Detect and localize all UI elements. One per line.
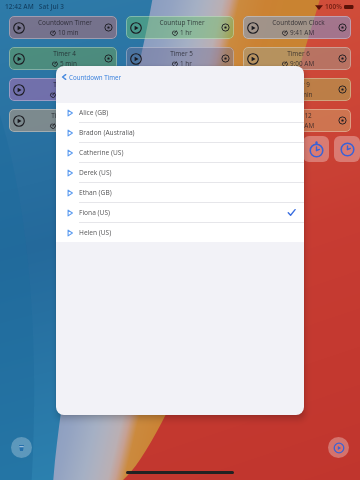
staticText: Bradon (Australia) bbox=[79, 128, 135, 137]
staticText: 7:30 AM bbox=[290, 121, 315, 130]
button[interactable]: Alice (GB) bbox=[56, 103, 304, 122]
button[interactable]: Timer 4 bbox=[9, 47, 117, 70]
staticText: Ethan (GB) bbox=[79, 188, 112, 197]
staticText: 9:00 AM bbox=[290, 59, 315, 68]
staticText: 12:42 AM Sat Jul 3 bbox=[5, 2, 64, 11]
button[interactable]: Fiona (US) bbox=[56, 203, 304, 222]
staticText: 1 hr bbox=[180, 59, 192, 68]
staticText: 3 hr bbox=[180, 121, 192, 130]
button[interactable]: Timer 12 bbox=[243, 109, 351, 132]
staticText: 10 min bbox=[292, 90, 313, 99]
staticText: Timer 10 bbox=[51, 111, 78, 120]
staticText: Alice (GB) bbox=[79, 108, 109, 117]
staticText: 10 min bbox=[58, 28, 79, 37]
button[interactable]: Countup Timer bbox=[126, 16, 234, 39]
staticText: Timer 5 bbox=[170, 49, 193, 58]
button[interactable]: Countdown Clock bbox=[243, 16, 351, 39]
button[interactable]: Bradon (Australia) bbox=[56, 123, 304, 142]
button[interactable]: Ethan (GB) bbox=[56, 183, 304, 202]
button[interactable]: Flashlight bbox=[11, 437, 32, 458]
staticText: 9:41 AM bbox=[290, 28, 315, 37]
button[interactable]: Clock app bbox=[334, 136, 360, 162]
staticText: Countdown Timer bbox=[69, 73, 122, 81]
staticText: 5 min bbox=[60, 59, 77, 68]
staticText: Countup Timer bbox=[159, 18, 205, 27]
staticText: 1 hr bbox=[180, 28, 192, 37]
button[interactable]: Countdown Timer bbox=[61, 69, 122, 84]
staticText: Timer 6 bbox=[287, 49, 310, 58]
button[interactable]: Timer 5 bbox=[126, 47, 234, 70]
staticText: Timer 4 bbox=[53, 49, 76, 58]
staticText: Timer 12 bbox=[285, 111, 312, 120]
button[interactable]: Helen (US) bbox=[56, 223, 304, 242]
staticText: Timer 7 bbox=[53, 80, 76, 89]
staticText: Fiona (US) bbox=[79, 208, 110, 217]
staticText: Timer 9 bbox=[287, 80, 310, 89]
button[interactable]: Camera bbox=[328, 437, 349, 458]
staticText: Countdown Clock bbox=[272, 18, 325, 27]
staticText: Derek (US) bbox=[79, 168, 112, 177]
staticText: 100% bbox=[325, 2, 342, 11]
button[interactable]: Timer 7 bbox=[9, 78, 117, 101]
button[interactable]: Catherine (US) bbox=[56, 143, 304, 162]
button[interactable]: Timer 10 bbox=[9, 109, 117, 132]
button[interactable]: Timer 6 bbox=[243, 47, 351, 70]
button[interactable]: Derek (US) bbox=[56, 163, 304, 182]
button[interactable]: Countdown Timer bbox=[9, 16, 117, 39]
staticText: Countdown Timer bbox=[38, 18, 92, 27]
button[interactable]: Timer 9 bbox=[243, 78, 351, 101]
button[interactable]: Timer 11 bbox=[126, 109, 234, 132]
staticText: Helen (US) bbox=[79, 228, 112, 237]
button[interactable]: Stopwatch app bbox=[303, 136, 329, 162]
staticText: Catherine (US) bbox=[79, 148, 124, 157]
